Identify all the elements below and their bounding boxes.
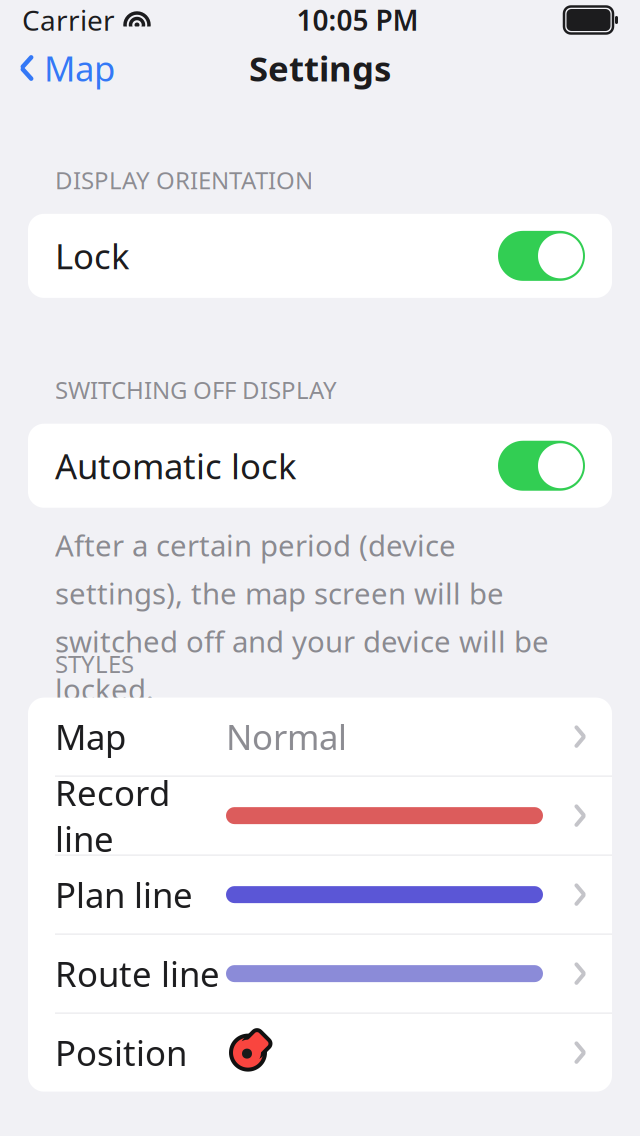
staticText: Map: [44, 45, 115, 91]
staticText: After a certain period (device settings)…: [55, 526, 549, 708]
staticText: STYLES: [55, 648, 134, 680]
staticText: SWITCHING OFF DISPLAY: [55, 374, 337, 406]
button[interactable]: Lock: [28, 214, 612, 298]
button[interactable]: Route line: [28, 935, 612, 1014]
staticText: Settings: [249, 45, 391, 91]
button[interactable]: Map: [28, 698, 612, 777]
staticText: Normal: [226, 714, 347, 760]
staticText: Map: [55, 714, 126, 760]
button[interactable]: Map: [0, 42, 133, 94]
staticText: Lock: [55, 233, 130, 279]
button[interactable]: Record line: [28, 777, 612, 856]
staticText: Route line: [55, 951, 220, 997]
staticText: Automatic lock: [55, 443, 297, 489]
staticText: Record line: [55, 770, 170, 862]
staticText: Position: [55, 1030, 187, 1076]
button[interactable]: Position: [28, 1014, 612, 1092]
staticText: DISPLAY ORIENTATION: [55, 164, 313, 196]
staticText: Plan line: [55, 872, 193, 918]
button[interactable]: Plan line: [28, 856, 612, 935]
button[interactable]: Automatic lock: [28, 424, 612, 508]
staticText: 10:05 PM: [296, 1, 418, 39]
staticText: Carrier: [22, 1, 115, 39]
